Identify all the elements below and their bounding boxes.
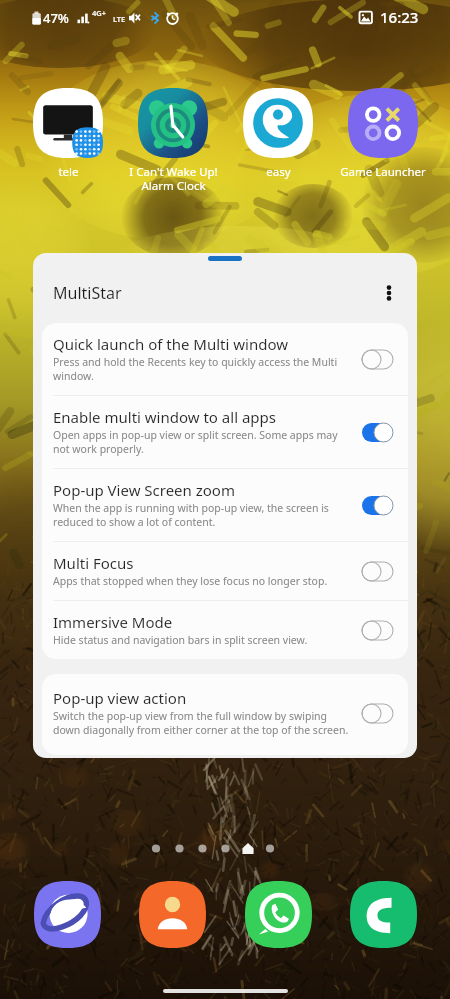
staticText: Immersive Mode <box>53 612 173 632</box>
button[interactable]: Phone <box>347 878 419 950</box>
button[interactable]: Contacts <box>136 878 208 950</box>
staticText: Pop-up view action <box>53 688 187 708</box>
staticText: Hide status and navigation bars in split… <box>53 633 308 647</box>
staticText: LTE <box>113 14 126 24</box>
staticText: easy <box>266 164 291 180</box>
button[interactable]: More options <box>372 276 406 310</box>
staticText: 47% <box>43 9 69 27</box>
button[interactable]: tele <box>16 88 120 180</box>
button[interactable]: Pop-up view action <box>42 674 408 755</box>
staticText: Switch the pop-up view from the full win… <box>53 709 350 737</box>
staticText: 16:23 <box>380 7 419 27</box>
staticText: Quick launch of the Multi window <box>53 334 288 354</box>
staticText: Pop-up View Screen zoom <box>53 480 235 500</box>
staticText: Press and hold the Recents key to quickl… <box>53 355 350 383</box>
staticText: MultiStar <box>53 282 122 304</box>
button[interactable]: Enable multi window to all apps <box>42 396 408 468</box>
button[interactable]: Quick launch of the Multi window <box>42 323 408 395</box>
button[interactable]: Pop-up View Screen zoom <box>42 469 408 541</box>
button[interactable]: On <box>354 420 401 444</box>
button[interactable]: easy <box>226 88 330 180</box>
staticText: I Can't Wake Up! Alarm Clock <box>129 164 218 193</box>
button[interactable]: Game Launcher <box>331 88 435 180</box>
staticText: 4G+ <box>92 8 107 18</box>
staticText: Apps that stopped when they lose focus n… <box>53 574 328 588</box>
button[interactable]: Off <box>354 559 401 583</box>
button[interactable]: WhatsApp <box>242 878 314 950</box>
button[interactable]: Home <box>163 989 288 993</box>
staticText: Enable multi window to all apps <box>53 407 276 427</box>
staticText: When the app is running with pop-up view… <box>53 501 350 529</box>
staticText: Game Launcher <box>340 164 426 180</box>
button[interactable]: I Can't Wake Up! Alarm Clock <box>121 88 225 193</box>
staticText: tele <box>58 164 79 180</box>
button[interactable]: Off <box>354 618 401 642</box>
button[interactable]: Immersive Mode <box>42 601 408 659</box>
button[interactable]: Internet <box>31 878 103 950</box>
staticText: Multi Focus <box>53 553 134 573</box>
button[interactable]: Off <box>354 701 401 725</box>
button[interactable]: On <box>354 493 401 517</box>
button[interactable]: Multi Focus <box>42 542 408 600</box>
staticText: Open apps in pop-up view or split screen… <box>53 428 350 456</box>
button[interactable]: Off <box>354 347 401 371</box>
